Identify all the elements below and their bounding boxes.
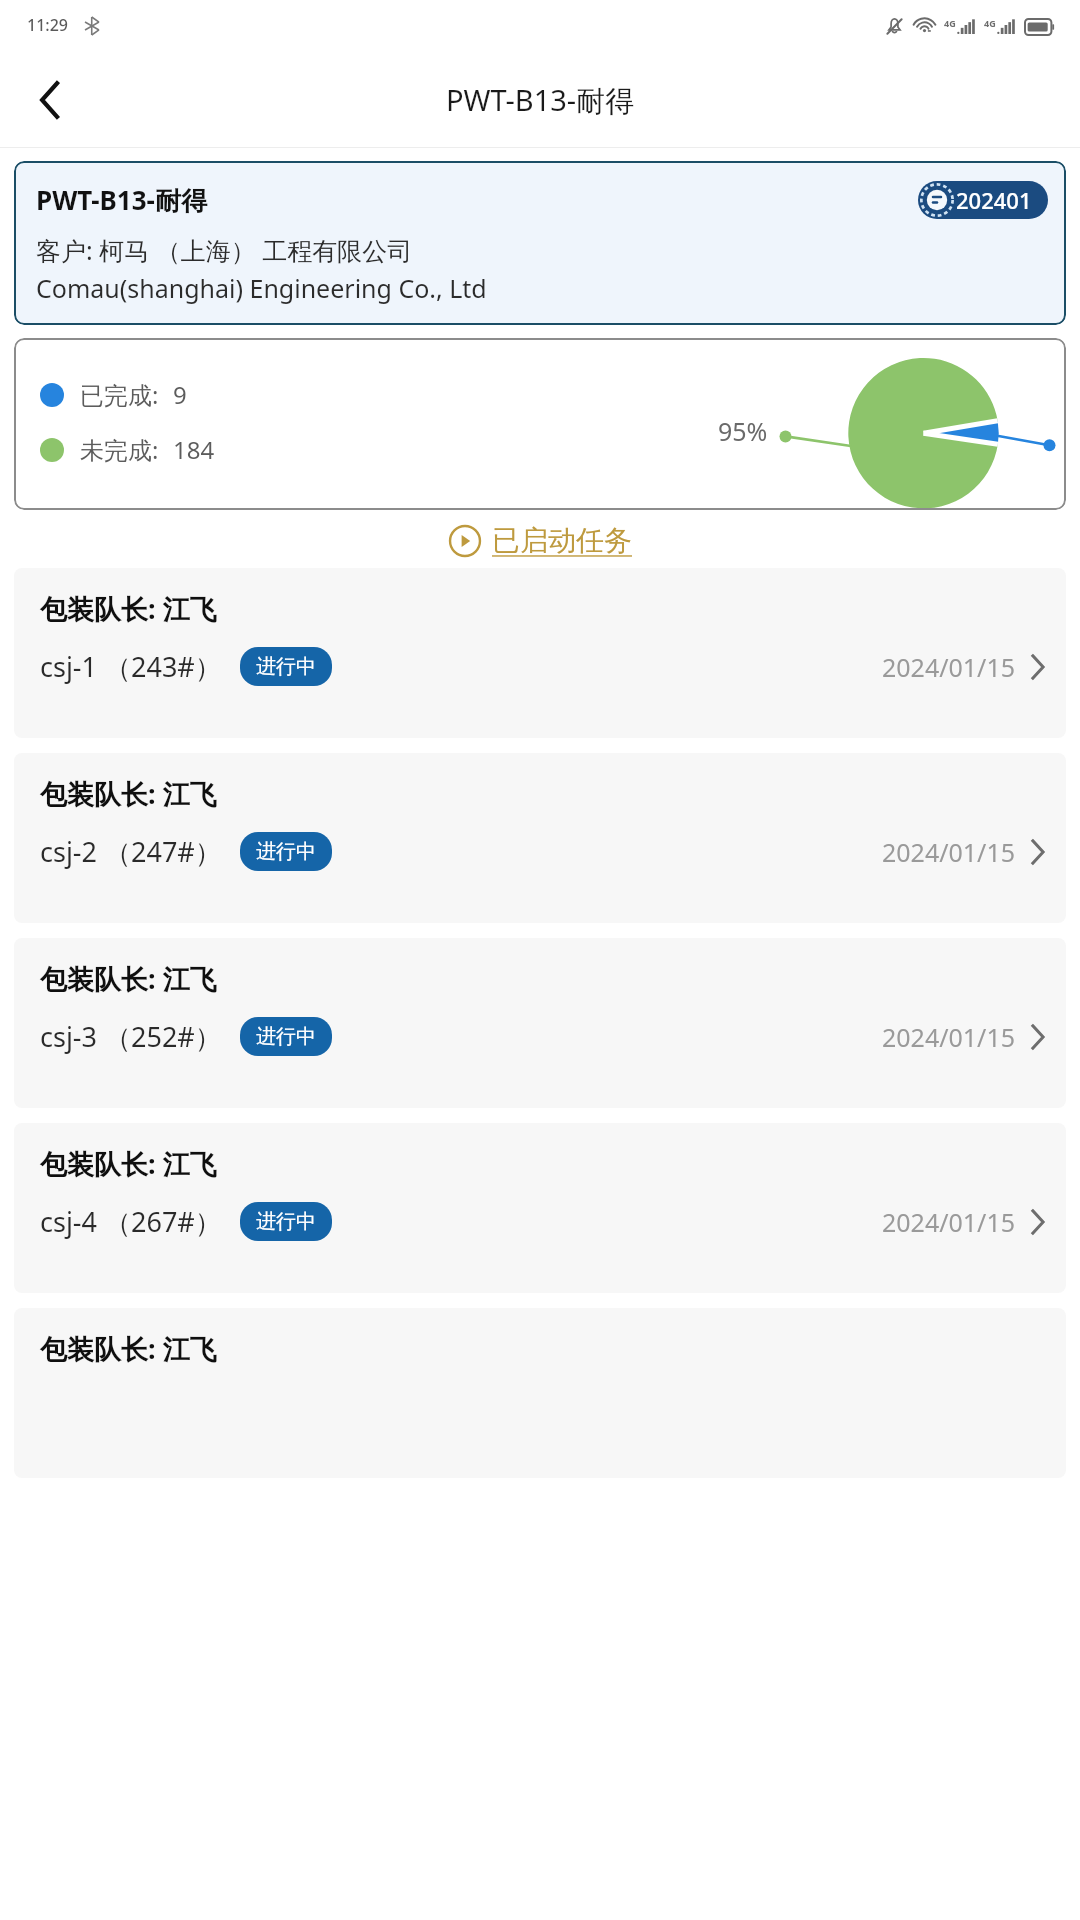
staticText: 客户: 柯马 （上海） 工程有限公司 <box>36 233 413 267</box>
staticText: 包装队长: 江飞 <box>40 590 217 627</box>
button[interactable]: 包装队长: 江飞 <box>14 568 1066 738</box>
staticText: 95% <box>718 414 768 448</box>
staticText: csj-1 （243#） <box>40 648 222 685</box>
button[interactable]: 进行中 <box>240 1017 332 1056</box>
staticText: 进行中 <box>256 654 316 679</box>
button[interactable]: 已完成: <box>14 338 1066 510</box>
staticText: csj-2 （247#） <box>40 833 222 870</box>
button[interactable]: 包装队长: 江飞 <box>14 1123 1066 1293</box>
button[interactable]: 进行中 <box>240 1202 332 1241</box>
staticText: 已启动任务 <box>492 523 632 558</box>
button[interactable]: 进行中 <box>240 647 332 686</box>
staticText: 2024/01/15 <box>882 835 1016 869</box>
staticText: 2024/01/15 <box>882 650 1016 684</box>
staticText: 4G <box>984 17 996 29</box>
button[interactable]: 包装队长: 江飞 <box>14 1308 1066 1478</box>
staticText: 9 <box>173 378 187 411</box>
staticText: 未完成: <box>80 433 159 466</box>
staticText: 11:29 <box>27 14 68 36</box>
staticText: 包装队长: 江飞 <box>40 1330 217 1367</box>
button[interactable]: 进行中 <box>240 832 332 871</box>
staticText: PWT-B13-耐得 <box>36 182 207 218</box>
staticText: 已完成: <box>80 378 159 411</box>
staticText: csj-4 （267#） <box>40 1203 222 1240</box>
staticText: csj-3 （252#） <box>40 1018 222 1055</box>
staticText: 2024/01/15 <box>882 1205 1016 1239</box>
button[interactable]: 包装队长: 江飞 <box>14 753 1066 923</box>
staticText: 202401 <box>956 185 1032 215</box>
staticText: 包装队长: 江飞 <box>40 960 217 997</box>
staticText: 进行中 <box>256 1024 316 1049</box>
button[interactable]: Back <box>20 70 80 130</box>
button[interactable]: 已启动任务 <box>448 523 632 558</box>
button[interactable]: 202401 <box>918 181 1048 219</box>
button[interactable]: 包装队长: 江飞 <box>14 938 1066 1108</box>
staticText: 进行中 <box>256 839 316 864</box>
button[interactable]: PWT-B13-耐得 <box>14 161 1066 325</box>
staticText: Comau(shanghai) Engineering Co., Ltd <box>36 271 487 305</box>
staticText: 包装队长: 江飞 <box>40 1145 217 1182</box>
staticText: 包装队长: 江飞 <box>40 775 217 812</box>
staticText: 进行中 <box>256 1209 316 1234</box>
staticText: 4G <box>944 17 956 29</box>
staticText: 2024/01/15 <box>882 1020 1016 1054</box>
staticText: 184 <box>173 433 215 466</box>
staticText: PWT-B13-耐得 <box>446 80 635 120</box>
